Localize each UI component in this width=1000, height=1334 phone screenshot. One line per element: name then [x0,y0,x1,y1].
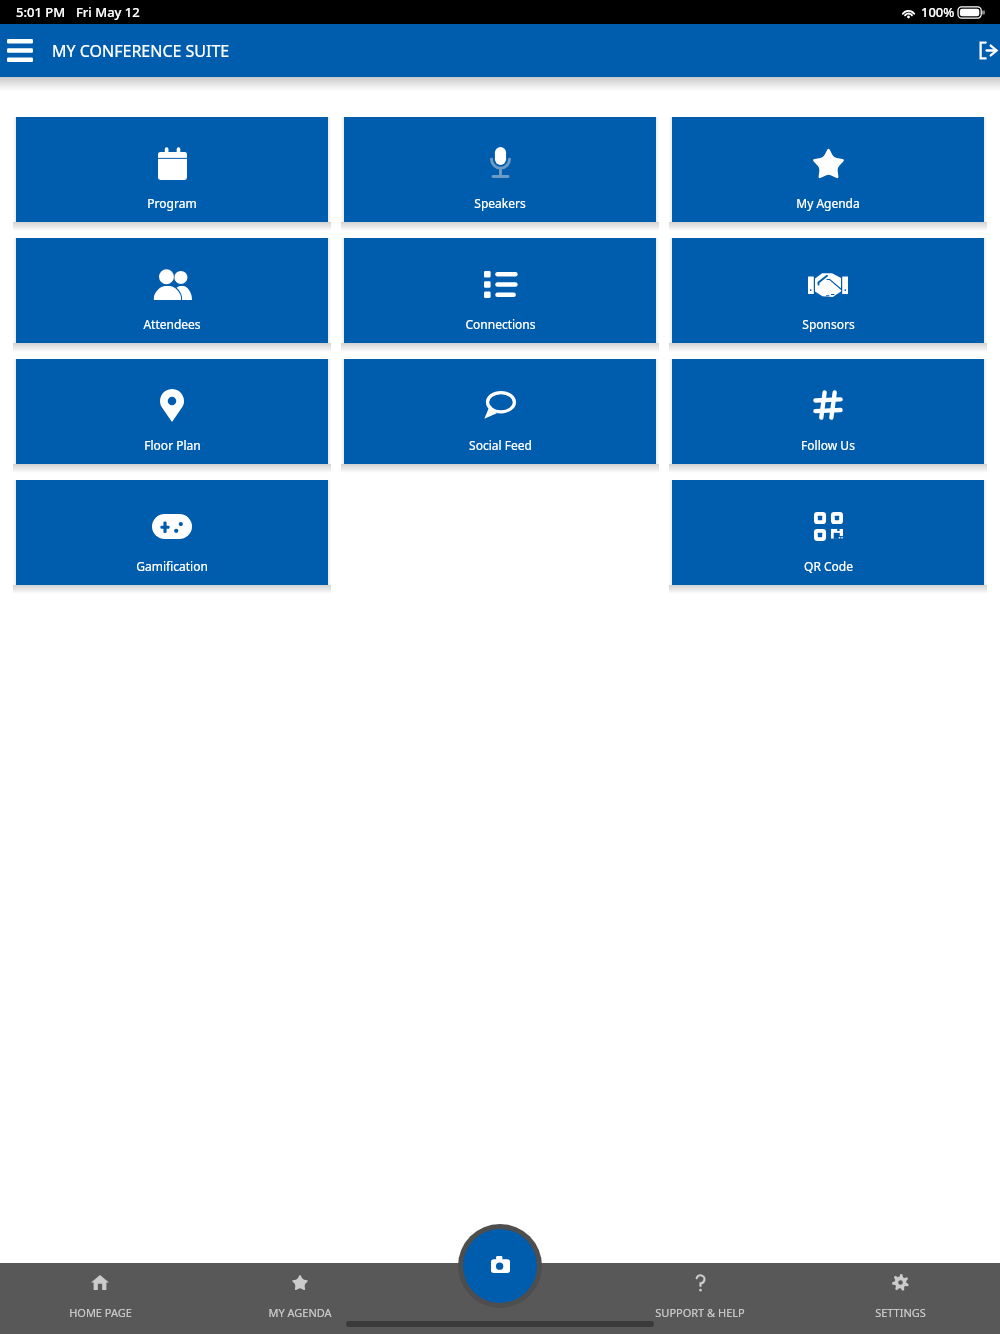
button[interactable]: MY AGENDA [200,1263,400,1334]
staticText: Floor Plan [144,437,201,453]
button[interactable]: Social Feed [344,359,656,464]
staticText: Attendees [143,316,201,332]
button[interactable]: SETTINGS [800,1263,1000,1334]
button[interactable]: Follow Us [672,359,984,464]
staticText: Fri May 12 [76,3,140,21]
button[interactable]: My Agenda [672,117,984,222]
staticText: 5:01 PM [16,3,66,21]
button[interactable]: Speakers [344,117,656,222]
button[interactable]: Attendees [16,238,328,343]
button[interactable]: SUPPORT & HELP [600,1263,800,1334]
staticText: MY CONFERENCE SUITE [52,40,230,62]
staticText: SUPPORT & HELP [655,1305,745,1320]
staticText: SETTINGS [875,1305,926,1320]
staticText: Follow Us [801,437,855,453]
button[interactable]: Open navigation menu [0,24,40,77]
button[interactable]: Scan with camera [463,1229,537,1303]
staticText: QR Code [804,558,853,574]
button[interactable]: Connections [344,238,656,343]
button[interactable]: Sponsors [672,238,984,343]
staticText: Program [147,195,197,211]
staticText: Gamification [136,558,208,574]
button[interactable]: QR Code [672,480,984,585]
button[interactable]: Gamification [16,480,328,585]
button[interactable]: Log out [954,24,1000,77]
staticText: Connections [465,316,536,332]
button[interactable]: Floor Plan [16,359,328,464]
button[interactable]: HOME PAGE [0,1263,200,1334]
staticText: 100% [921,3,955,21]
staticText: HOME PAGE [69,1305,132,1320]
staticText: Social Feed [469,437,532,453]
staticText: Sponsors [802,316,855,332]
staticText: MY AGENDA [268,1305,332,1320]
staticText: My Agenda [796,195,860,211]
staticText: Speakers [474,195,526,211]
button[interactable]: Program [16,117,328,222]
